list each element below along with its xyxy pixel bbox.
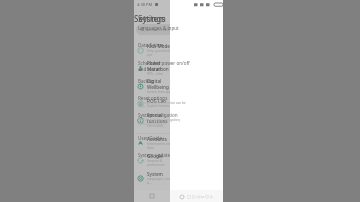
- staticText: Digital Wellbeing: [147, 78, 174, 90]
- staticText: Settings: [134, 13, 166, 24]
- button[interactable]: System update: [138, 152, 191, 158]
- staticText: System navigation: [138, 112, 178, 118]
- staticText: Explore features: [147, 104, 172, 108]
- staticText: 4:38 PM: [137, 2, 153, 7]
- staticText: Accounts: [147, 136, 168, 142]
- staticText: Help guard kids' eye: [147, 49, 174, 57]
- button[interactable]: System: [134, 170, 174, 186]
- staticText: User Guide: [138, 135, 163, 141]
- button[interactable]: ROG Lab: [134, 95, 174, 111]
- button[interactable]: Date & time: [138, 42, 191, 48]
- staticText: Network, apps, or device can be reset: [138, 101, 191, 109]
- staticText: Reset options: [138, 95, 168, 101]
- button[interactable]: Scheduled power on/off and restart: [138, 60, 191, 72]
- staticText: Google: [147, 153, 163, 159]
- staticText: Search settings: [147, 27, 176, 32]
- button[interactable]: User Guide: [138, 135, 191, 141]
- button[interactable]: Search settings: [136, 24, 180, 35]
- button[interactable]: Power Marathon: [134, 60, 174, 76]
- staticText: Choose between navigation, gesture navig…: [138, 118, 191, 126]
- staticText: Scheduled power on/off and restart: [138, 60, 191, 72]
- staticText: □ ○ ◁ ▭ ⬡ ◇: [187, 194, 213, 199]
- staticText: Backup: [138, 78, 154, 84]
- button[interactable]: Kids Mode: [134, 42, 174, 58]
- button[interactable]: Digital Wellbeing: [134, 78, 174, 94]
- button[interactable]: Languages & input: [138, 25, 191, 31]
- staticText: System: [138, 13, 166, 24]
- button[interactable]: Reset options: [138, 95, 191, 109]
- button[interactable]: Google: [134, 152, 174, 168]
- staticText: Services & preferences: [147, 159, 174, 167]
- button[interactable]: Special functions: [134, 112, 174, 128]
- staticText: Screen time app usage: [147, 90, 174, 94]
- staticText: System: [147, 171, 163, 177]
- button[interactable]: Backup: [138, 78, 191, 84]
- button[interactable]: Home: [180, 195, 184, 199]
- staticText: Languages, time, b...: [147, 177, 174, 185]
- staticText: Information and data: [147, 142, 174, 150]
- staticText: Languages & input: [138, 25, 179, 31]
- staticText: System update: [138, 152, 171, 158]
- button[interactable]: Accounts: [134, 135, 174, 151]
- staticText: RPS – ultra charge: [147, 72, 174, 76]
- staticText: ROG Lab: [147, 98, 166, 104]
- button[interactable]: Recents: [150, 194, 154, 198]
- staticText: Kids Mode: [147, 43, 170, 49]
- button[interactable]: System navigation: [138, 112, 191, 126]
- staticText: Date & time: [138, 42, 164, 48]
- staticText: Special functions: [147, 112, 174, 124]
- staticText: Lift to wait, gesture, smart Panel: [147, 124, 174, 128]
- staticText: Power Marathon: [147, 60, 174, 72]
